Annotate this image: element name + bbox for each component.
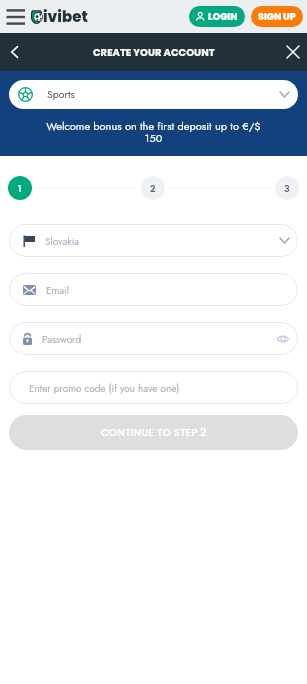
button[interactable]: Email bbox=[9, 273, 298, 306]
staticText: ivibet bbox=[43, 6, 88, 27]
button[interactable]: 1 bbox=[8, 176, 32, 200]
staticText: CONTINUE TO STEP 2 bbox=[101, 425, 207, 440]
button[interactable]: Menu bbox=[2, 3, 30, 31]
button[interactable]: Back bbox=[5, 43, 23, 61]
button[interactable]: Show password bbox=[277, 333, 289, 345]
button[interactable]: Close bbox=[284, 43, 302, 61]
button[interactable]: ivibet bbox=[31, 6, 88, 27]
staticText: Enter promo code (if you have one) bbox=[29, 381, 180, 395]
staticText: Sports bbox=[47, 87, 75, 102]
button[interactable]: LOGIN bbox=[189, 6, 245, 27]
button[interactable]: Enter promo code (if you have one) bbox=[9, 371, 298, 404]
staticText: 2 bbox=[150, 182, 156, 195]
staticText: CREATE YOUR ACCOUNT bbox=[93, 45, 215, 59]
staticText: SIGN UP bbox=[258, 10, 296, 23]
button[interactable]: Sports bbox=[9, 80, 298, 109]
staticText: Email bbox=[46, 283, 70, 297]
button[interactable]: 2 bbox=[141, 176, 165, 200]
button[interactable]: SIGN UP bbox=[251, 6, 303, 27]
staticText: LOGIN bbox=[208, 10, 238, 23]
staticText: Slovakia bbox=[45, 234, 80, 248]
staticText: 1 bbox=[18, 182, 22, 195]
staticText: Password bbox=[42, 332, 82, 346]
button[interactable]: 3 bbox=[275, 176, 299, 200]
staticText: 3 bbox=[284, 182, 290, 195]
button[interactable]: Slovakia bbox=[9, 224, 298, 257]
button[interactable]: CONTINUE TO STEP 2 bbox=[9, 415, 298, 450]
staticText: Welcome bonus on the first deposit up to… bbox=[40, 118, 267, 146]
button[interactable]: Password bbox=[9, 322, 298, 355]
